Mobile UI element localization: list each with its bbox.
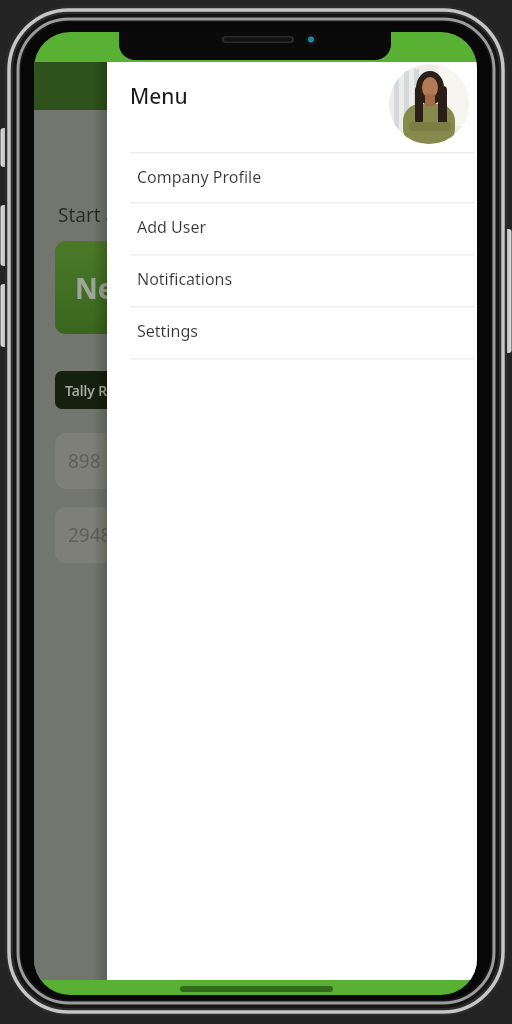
button[interactable]: Add User <box>130 202 475 252</box>
button[interactable]: Tally Re <box>55 371 165 409</box>
staticText: New <box>75 269 138 307</box>
button[interactable] <box>389 64 469 144</box>
staticText: Add User <box>137 216 207 238</box>
staticText: Menu <box>130 82 188 111</box>
button[interactable]: 898 <box>55 433 185 489</box>
button[interactable]: New <box>55 241 185 334</box>
button[interactable]: Settings <box>130 306 475 356</box>
staticText: Start a Part <box>58 202 159 228</box>
button[interactable]: Notifications <box>130 254 475 304</box>
button[interactable]: 2948 <box>55 507 185 563</box>
staticText: Settings <box>137 320 198 342</box>
staticText: 2948 <box>68 522 112 548</box>
button[interactable]: Company Profile <box>130 152 475 202</box>
staticText: Tally Re <box>65 381 116 400</box>
staticText: Notifications <box>137 268 233 290</box>
staticText: Company Profile <box>137 166 262 188</box>
staticText: 898 <box>68 448 101 474</box>
